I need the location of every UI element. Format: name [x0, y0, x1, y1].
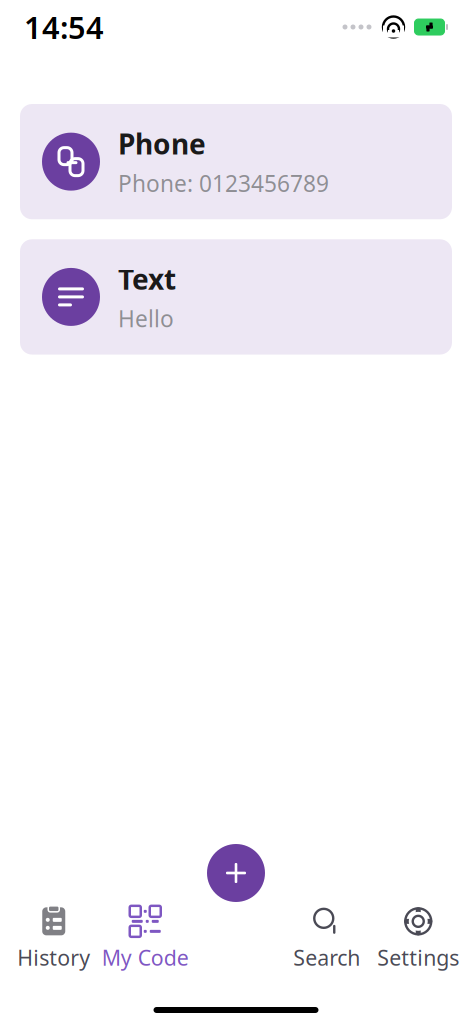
staticText: Text: [118, 260, 176, 297]
staticText: Search: [293, 943, 360, 972]
button[interactable]: Search: [281, 900, 372, 978]
button[interactable]: Add: [191, 830, 281, 916]
staticText: Hello: [118, 303, 174, 334]
staticText: Settings: [377, 943, 459, 972]
button[interactable]: My Code: [99, 900, 191, 978]
button[interactable]: Settings: [372, 900, 464, 978]
staticText: 14:54: [24, 7, 104, 47]
button[interactable]: Phone: [20, 104, 452, 219]
staticText: Phone: [118, 125, 206, 162]
button[interactable]: History: [8, 900, 99, 978]
staticText: History: [17, 943, 90, 972]
staticText: My Code: [102, 943, 189, 972]
button[interactable]: Text: [20, 239, 452, 355]
staticText: Phone: 0123456789: [118, 168, 329, 198]
